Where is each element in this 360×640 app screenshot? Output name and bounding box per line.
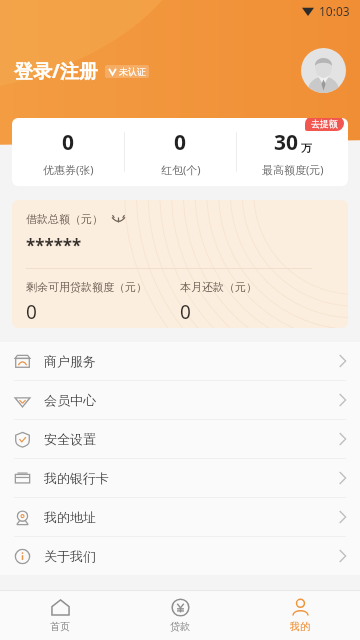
staticText: 10:03 [319, 3, 350, 19]
button[interactable]: 去提额 [305, 118, 344, 131]
staticText: 借款总额（元） [26, 212, 103, 226]
button[interactable]: Profile avatar [301, 48, 346, 93]
button[interactable]: Toggle amount visibility [110, 213, 127, 225]
button[interactable]: 0 [125, 118, 236, 186]
staticText: 0 [26, 299, 37, 325]
staticText: 本月还款（元） [180, 280, 257, 294]
button[interactable]: 首页 [0, 591, 120, 640]
button[interactable]: 我的银行卡 [0, 459, 360, 497]
button[interactable]: 会员中心 [0, 381, 360, 419]
button[interactable]: 登录/注册 [14, 54, 149, 88]
button[interactable]: 我的 [240, 591, 360, 640]
staticText: 未认证 [119, 66, 146, 77]
staticText: 最高额度(元) [262, 162, 324, 177]
button[interactable]: 商户服务 [0, 342, 360, 380]
staticText: 商户服务 [44, 353, 96, 369]
staticText: 首页 [50, 620, 70, 633]
staticText: 0 [180, 299, 191, 325]
staticText: 会员中心 [44, 392, 96, 408]
staticText: 万 [301, 141, 312, 155]
button[interactable]: 贷款 [120, 591, 240, 640]
staticText: 我的地址 [44, 509, 96, 525]
staticText: 我的银行卡 [44, 470, 109, 486]
staticText: 关于我们 [44, 548, 96, 564]
staticText: 0 [174, 128, 187, 157]
staticText: 贷款 [170, 620, 190, 633]
staticText: 安全设置 [44, 431, 96, 447]
staticText: 红包(个) [161, 162, 201, 177]
staticText: 优惠券(张) [43, 162, 94, 177]
staticText: 0 [62, 128, 75, 157]
staticText: 我的 [290, 620, 310, 633]
staticText: 30 [274, 128, 299, 157]
button[interactable]: 0 [12, 118, 124, 186]
staticText: ****** [26, 234, 82, 257]
staticText: 登录/注册 [14, 58, 98, 84]
button[interactable]: 安全设置 [0, 420, 360, 458]
staticText: 去提额 [311, 118, 338, 129]
button[interactable]: 关于我们 [0, 537, 360, 575]
staticText: 剩余可用贷款额度（元） [26, 280, 147, 294]
button[interactable]: 30 [237, 118, 348, 186]
button[interactable]: 我的地址 [0, 498, 360, 536]
